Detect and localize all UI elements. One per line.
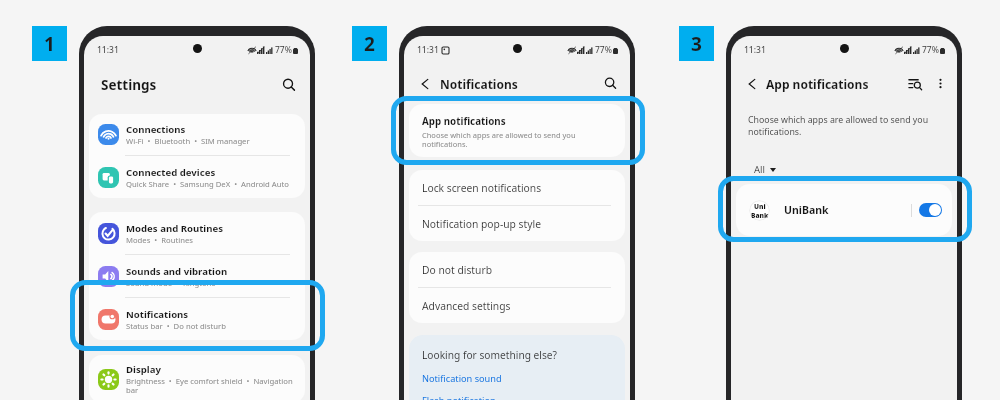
staticText: Notifications: [126, 308, 189, 321]
staticText: 2: [364, 31, 375, 57]
staticText: Do not disturb: [422, 263, 492, 277]
staticText: Modes • Routines: [126, 235, 193, 245]
staticText: Status bar • Do not disturb: [126, 321, 226, 331]
staticText: Connected devices: [126, 166, 216, 179]
button[interactable]: Search: [281, 77, 297, 93]
button[interactable]: More options: [934, 77, 947, 90]
staticText: Quick Share • Samsung DeX • Android Auto: [126, 179, 289, 189]
staticText: App notifications: [766, 76, 869, 92]
button[interactable]: Back: [745, 77, 759, 91]
button[interactable]: Notification pop-up style: [409, 206, 625, 241]
button[interactable]: Back: [418, 77, 432, 91]
staticText: Display: [126, 363, 161, 376]
button[interactable]: App notifications: [409, 104, 625, 157]
staticText: Notification pop-up style: [422, 217, 541, 231]
button[interactable]: Do not disturb: [409, 252, 625, 288]
staticText: Sounds and vibration: [126, 265, 228, 278]
button[interactable]: Notifications: [89, 298, 305, 340]
button[interactable]: Sounds and vibration: [89, 255, 305, 298]
staticText: Choose which apps are allowed to send yo…: [748, 114, 937, 138]
button[interactable]: Search: [603, 76, 618, 91]
staticText: Advanced settings: [422, 299, 511, 313]
staticText: 11:31: [97, 44, 119, 56]
button[interactable]: Modes and Routines: [89, 212, 305, 255]
staticText: Notification sound: [422, 372, 502, 385]
button[interactable]: Advanced settings: [409, 288, 625, 323]
staticText: 77%: [275, 44, 292, 56]
staticText: Flash notification: [422, 394, 496, 400]
staticText: Notifications: [440, 76, 518, 92]
button[interactable]: Lock screen notifications: [409, 170, 625, 206]
staticText: Connections: [126, 123, 186, 136]
staticText: 11:31: [417, 44, 439, 56]
staticText: 77%: [595, 44, 612, 56]
staticText: Wi-Fi • Bluetooth • SIM manager: [126, 136, 250, 146]
staticText: Modes and Routines: [126, 222, 224, 235]
staticText: Bank: [751, 211, 769, 220]
button[interactable]: UniBank notifications toggle: [919, 203, 942, 217]
button[interactable]: All: [754, 163, 776, 176]
staticText: All: [754, 163, 765, 176]
button[interactable]: Connected devices: [89, 156, 305, 198]
button[interactable]: Connections: [89, 114, 305, 156]
staticText: Uni: [754, 202, 766, 211]
button[interactable]: Display: [89, 355, 305, 400]
staticText: Settings: [101, 76, 157, 94]
staticText: Sound mode • Ringtone: [126, 278, 216, 288]
button[interactable]: Uni: [736, 184, 952, 236]
staticText: Lock screen notifications: [422, 181, 542, 195]
staticText: 11:31: [744, 44, 766, 56]
staticText: Looking for something else?: [422, 348, 558, 362]
staticText: Brightness • Eye comfort shield • Naviga…: [126, 376, 297, 395]
staticText: Choose which apps are allowed to send yo…: [422, 130, 611, 150]
staticText: 77%: [922, 44, 939, 56]
staticText: 1: [44, 31, 55, 57]
staticText: App notifications: [422, 115, 506, 128]
staticText: 3: [691, 31, 702, 57]
staticText: UniBank: [784, 203, 829, 217]
button[interactable]: Sort and search: [908, 76, 923, 91]
